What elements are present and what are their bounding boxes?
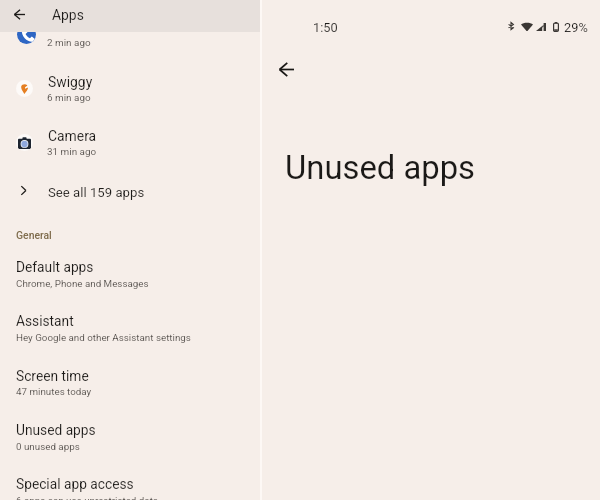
staticText: Hey Google and other Assistant settings: [16, 332, 191, 343]
staticText: Special app access: [16, 476, 134, 492]
staticText: 2 min ago: [47, 37, 91, 49]
staticText: 47 minutes today: [16, 386, 92, 397]
button[interactable]: [0, 308, 260, 354]
staticText: Unused apps: [285, 149, 476, 187]
staticText: 0 unused apps: [16, 441, 80, 452]
staticText: Camera: [48, 128, 97, 144]
button[interactable]: [0, 124, 260, 162]
staticText: Apps: [52, 7, 84, 23]
button[interactable]: [0, 176, 260, 208]
staticText: Default apps: [16, 259, 94, 275]
button[interactable]: [0, 471, 260, 500]
staticText: Screen time: [16, 368, 89, 384]
staticText: Swiggy: [48, 74, 93, 90]
staticText: Chrome, Phone and Messages: [16, 278, 149, 289]
button[interactable]: [0, 254, 260, 300]
staticText: General: [16, 229, 52, 241]
button[interactable]: [0, 363, 260, 409]
staticText: 6 min ago: [47, 92, 91, 104]
button[interactable]: [0, 417, 260, 463]
staticText: 1:50: [313, 20, 338, 35]
staticText: See all 159 apps: [48, 185, 145, 200]
staticText: Unused apps: [16, 422, 96, 438]
button[interactable]: Navigate up: [272, 55, 300, 83]
staticText: 31 min ago: [47, 146, 97, 158]
staticText: Assistant: [16, 313, 74, 329]
staticText: 6 apps can use unrestricted data: [16, 495, 159, 500]
button[interactable]: [0, 70, 260, 108]
button[interactable]: Navigate up: [8, 3, 30, 25]
staticText: 29%: [564, 20, 588, 35]
